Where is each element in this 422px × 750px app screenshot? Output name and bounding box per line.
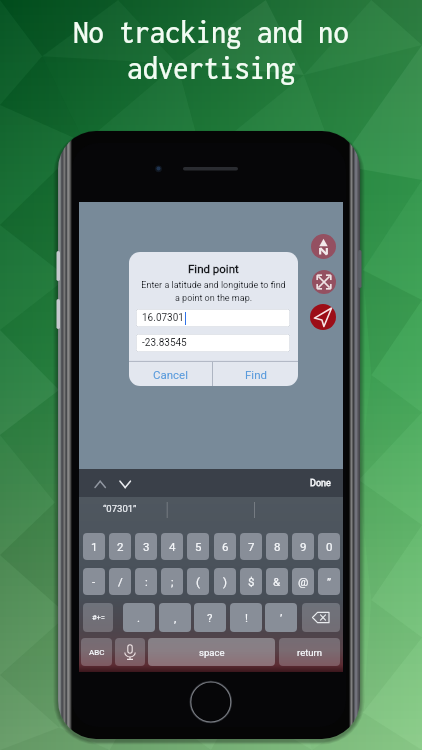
staticText: ” <box>327 575 332 588</box>
button[interactable]: . <box>123 603 155 632</box>
staticText: Done <box>310 478 331 489</box>
staticText: 3 <box>143 540 150 553</box>
button[interactable]: My location <box>310 304 336 330</box>
button[interactable]: ! <box>230 603 262 632</box>
staticText: ( <box>196 575 200 588</box>
button[interactable]: ( <box>187 568 209 595</box>
button[interactable]: 6 <box>214 533 236 560</box>
button[interactable]: - <box>83 568 105 595</box>
button[interactable]: 8 <box>266 533 288 560</box>
button[interactable]: ” <box>318 568 340 595</box>
staticText: #+= <box>92 613 105 622</box>
button[interactable]: 1 <box>83 533 105 560</box>
button[interactable]: return <box>279 638 340 666</box>
button[interactable]: ; <box>161 568 183 595</box>
staticText: ? <box>207 611 213 624</box>
staticText: Enter a latitude and longitude to find a… <box>132 280 295 306</box>
button[interactable]: , <box>159 603 191 632</box>
button[interactable]: space <box>148 638 275 666</box>
staticText: ! <box>245 611 248 624</box>
staticText: , <box>174 611 177 624</box>
button[interactable]: Dictate <box>115 638 145 666</box>
staticText: ; <box>171 575 174 588</box>
button[interactable]: & <box>266 568 288 595</box>
button[interactable]: / <box>109 568 131 595</box>
button[interactable]: $ <box>240 568 262 595</box>
button[interactable]: 3 <box>135 533 157 560</box>
button[interactable]: 2 <box>109 533 131 560</box>
staticText: 8 <box>274 540 281 553</box>
button[interactable]: 0 <box>318 533 340 560</box>
button[interactable]: ’ <box>265 603 297 632</box>
button[interactable]: Cancel <box>129 362 213 386</box>
staticText: : <box>145 575 148 588</box>
button[interactable]: Done <box>305 476 335 491</box>
staticText: 5 <box>195 540 202 553</box>
staticText: return <box>297 647 322 658</box>
button[interactable]: ) <box>214 568 236 595</box>
button[interactable]: 5 <box>187 533 209 560</box>
staticText: ) <box>223 575 228 588</box>
staticText: “07301” <box>103 503 137 514</box>
staticText: 16.07301 <box>142 312 184 324</box>
staticText: / <box>118 575 123 588</box>
button[interactable]: ABC <box>81 638 112 666</box>
staticText: Find <box>245 368 267 381</box>
button[interactable]: Previous field <box>94 478 108 490</box>
staticText: 9 <box>300 540 307 553</box>
button[interactable]: #+= <box>83 603 113 632</box>
button[interactable]: Compass north <box>311 234 336 259</box>
button[interactable]: -23.83545 <box>136 334 290 352</box>
staticText: & <box>273 575 281 588</box>
staticText: 1 <box>91 540 98 553</box>
button[interactable]: Fullscreen <box>312 270 336 294</box>
button[interactable]: 16.07301 <box>136 309 290 327</box>
staticText: 2 <box>117 540 124 553</box>
staticText: 4 <box>169 540 176 553</box>
staticText: ABC <box>89 648 105 657</box>
staticText: 6 <box>222 540 229 553</box>
staticText: No tracking and no <box>73 14 349 50</box>
button[interactable]: 7 <box>240 533 262 560</box>
staticText: 7 <box>248 540 255 553</box>
button[interactable]: 4 <box>161 533 183 560</box>
button[interactable]: ? <box>194 603 226 632</box>
staticText: advertising <box>127 50 296 86</box>
staticText: space <box>199 647 225 658</box>
button[interactable]: Next field <box>119 478 133 490</box>
button[interactable]: Backspace <box>302 603 340 632</box>
button[interactable]: : <box>135 568 157 595</box>
staticText: ’ <box>280 611 283 624</box>
staticText: 0 <box>326 540 333 553</box>
button[interactable]: 9 <box>292 533 314 560</box>
button[interactable]: @ <box>292 568 314 595</box>
staticText: -23.83545 <box>142 337 187 349</box>
staticText: $ <box>248 575 255 588</box>
staticText: @ <box>298 575 309 588</box>
staticText: Cancel <box>153 368 189 381</box>
staticText: . <box>137 611 141 624</box>
button[interactable]: Find <box>213 362 298 386</box>
staticText: Find point <box>188 262 239 275</box>
staticText: - <box>92 575 96 588</box>
